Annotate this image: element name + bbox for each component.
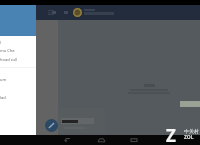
button[interactable]: Navigate (45, 119, 58, 132)
button[interactable]: Cast (63, 9, 69, 15)
button[interactable]: um (0, 76, 36, 83)
button[interactable]: mu Cha (0, 46, 36, 55)
staticText: lad (0, 95, 6, 100)
button[interactable]: l (0, 39, 36, 46)
staticText: mu Cha (0, 48, 15, 53)
staticText: Z (166, 124, 176, 145)
staticText: ZOL (184, 134, 194, 141)
button[interactable]: Back (61, 136, 73, 144)
button[interactable]: Home (95, 136, 107, 144)
button[interactable]: Recent apps (128, 136, 140, 144)
staticText: um (0, 77, 7, 82)
staticText: l (0, 40, 2, 45)
button[interactable] (61, 118, 94, 124)
button[interactable]: Sort (46, 8, 58, 17)
staticText: 中关村 (184, 128, 199, 134)
button[interactable]: lad (0, 94, 36, 101)
button[interactable]: Account (73, 8, 82, 17)
button[interactable]: hoad cull (0, 55, 36, 64)
staticText: hoad cull (0, 57, 18, 62)
